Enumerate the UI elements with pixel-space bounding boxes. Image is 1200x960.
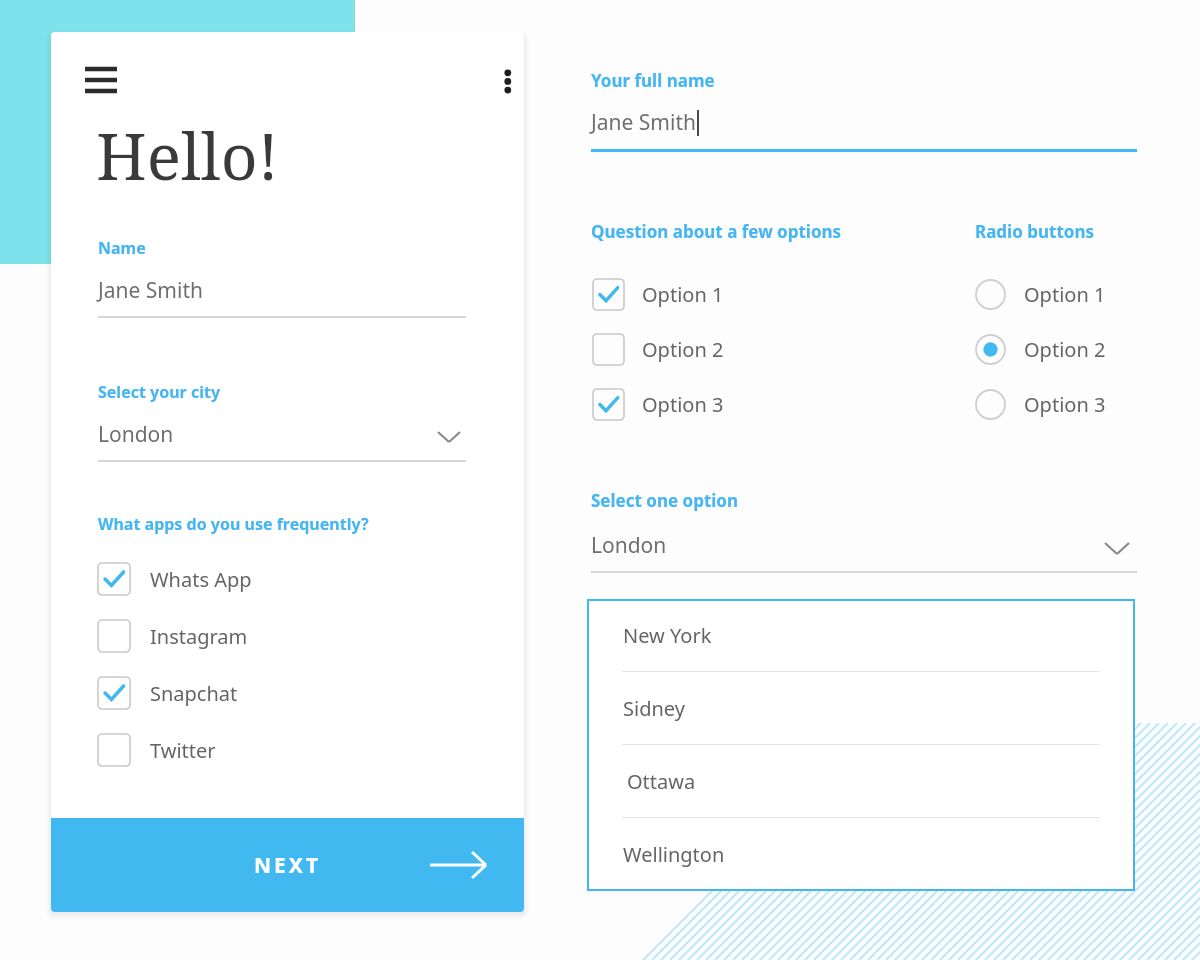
staticText: New York [623, 622, 712, 649]
staticText: Radio buttons [975, 220, 1094, 243]
button[interactable]: Wellington [587, 818, 1135, 891]
button[interactable]: Select one option [591, 519, 1137, 573]
button[interactable]: Jane Smith [591, 100, 1137, 152]
button[interactable]: Option 1 [593, 272, 883, 316]
staticText: Option 3 [1024, 391, 1106, 418]
button[interactable]: Menu [79, 56, 127, 96]
button[interactable]: Jane Smith [98, 264, 466, 318]
button[interactable]: Snapchat [98, 668, 428, 718]
staticText: Instagram [150, 623, 248, 650]
staticText: Snapchat [150, 680, 238, 707]
staticText: Ottawa [627, 768, 696, 795]
button[interactable]: Sidney [587, 672, 1135, 745]
staticText: London [98, 420, 174, 449]
button[interactable]: Twitter [98, 725, 428, 775]
button[interactable]: Option 3 [975, 382, 1200, 426]
button[interactable]: Option 2 [975, 327, 1200, 371]
staticText: Question about a few options [591, 220, 842, 243]
button[interactable]: Option 2 [593, 327, 883, 371]
staticText: London [591, 531, 667, 560]
button[interactable]: Option 1 [975, 272, 1200, 316]
staticText: Option 1 [1024, 281, 1106, 308]
staticText: Jane Smith [98, 276, 203, 305]
staticText: NEXT [254, 851, 322, 880]
staticText: Option 2 [642, 336, 724, 363]
staticText: Option 2 [1024, 336, 1106, 363]
button[interactable]: New York [587, 599, 1135, 672]
staticText: Whats App [150, 566, 252, 593]
button[interactable]: Option 3 [593, 382, 883, 426]
button[interactable]: Ottawa [587, 745, 1135, 818]
staticText: Twitter [150, 737, 216, 764]
staticText: Jane Smith [591, 108, 696, 137]
staticText: Option 1 [642, 281, 724, 308]
button[interactable]: NEXT [51, 818, 524, 912]
staticText: Option 3 [642, 391, 724, 418]
staticText: Select one option [591, 489, 739, 512]
button[interactable]: Instagram [98, 611, 428, 661]
staticText: Name [98, 237, 146, 259]
staticText: Sidney [623, 695, 685, 722]
staticText: Wellington [623, 841, 725, 868]
button[interactable]: Whats App [98, 554, 428, 604]
staticText: Select your city [98, 381, 221, 403]
staticText: Hello! [96, 112, 279, 199]
staticText: What apps do you use frequently? [98, 513, 369, 535]
button[interactable]: Select your city [98, 408, 466, 462]
staticText: Your full name [591, 69, 715, 92]
button[interactable]: More options [481, 56, 521, 104]
